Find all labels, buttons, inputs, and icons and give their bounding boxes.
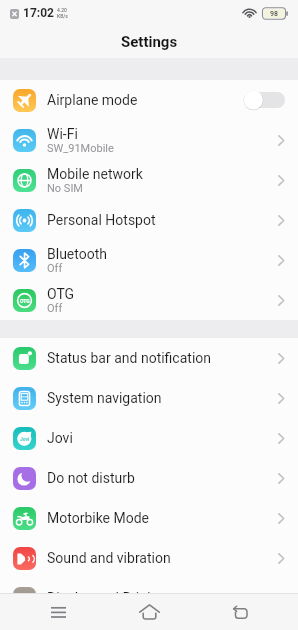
staticText: Motorbike Mode [47,510,150,526]
button[interactable]: Bluetooth [0,240,298,280]
button[interactable] [135,598,163,626]
staticText: Jovi [20,436,30,442]
button[interactable]: Display and Brightness [0,578,298,618]
button[interactable] [226,598,254,626]
staticText: Personal Hotspot [47,212,156,228]
staticText: Mobile network [47,166,143,182]
staticText: Bluetooth [47,246,107,262]
button[interactable]: Do not disturb [0,458,298,498]
staticText: Sound and vibration [47,550,171,566]
staticText: Off [47,302,63,315]
button[interactable] [245,89,285,111]
staticText: OTG [20,298,30,304]
staticText: Wi-Fi [47,126,78,142]
button[interactable]: Motorbike Mode [0,498,298,538]
staticText: 17:02 [23,6,54,20]
staticText: Jovi [47,430,73,446]
button[interactable]: Wi-Fi [0,120,298,160]
staticText: OTG [47,286,75,302]
staticText: SW_91Mobile [47,142,114,155]
staticText: Settings [121,33,178,51]
button[interactable]: Sound and vibration [0,538,298,578]
staticText: Do not disturb [47,470,135,486]
staticText: Status bar and notification [47,350,212,366]
staticText: 4.20 [57,7,67,13]
staticText: No SIM [47,182,83,195]
button[interactable]: Status bar and notification [0,338,298,378]
button[interactable]: Personal Hotspot [0,200,298,240]
staticText: 98 [270,10,278,18]
button[interactable]: Mobile network [0,160,298,200]
button[interactable]: OTG [0,280,298,320]
staticText: System navigation [47,390,162,406]
button[interactable]: System navigation [0,378,298,418]
button[interactable]: Jovi [0,418,298,458]
button[interactable]: Airplane mode [0,80,298,120]
staticText: Off [47,262,63,275]
staticText: KB/s [57,13,68,19]
staticText: Display and Brightness [47,590,190,606]
staticText: Airplane mode [47,92,138,108]
button[interactable] [44,598,72,626]
